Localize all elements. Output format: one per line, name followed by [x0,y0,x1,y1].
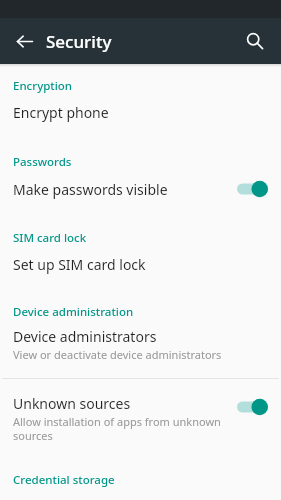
staticText: Encryption [13,78,73,94]
staticText: SIM card lock [13,230,87,246]
staticText: Device administrators [13,327,157,346]
button[interactable]: Unknown sources [0,387,281,450]
staticText: View or deactivate device administrators [13,347,222,362]
staticText: Encrypt phone [13,103,109,122]
button[interactable]: Toggle [237,180,268,198]
button[interactable]: Toggle [237,398,268,416]
staticText: Device administration [13,304,134,320]
staticText: Set up SIM card lock [13,255,146,274]
button[interactable]: Device administrators [0,320,281,369]
staticText: Allow installation of apps from unknown … [13,414,229,443]
button[interactable]: Encrypt phone [0,94,281,130]
staticText: Unknown sources [13,394,131,413]
staticText: Security [46,30,112,53]
button[interactable]: Set up SIM card lock [0,246,281,282]
staticText: Passwords [13,154,72,170]
button[interactable]: Back [6,23,42,59]
button[interactable]: Search [237,23,273,59]
staticText: Credential storage [13,472,115,488]
button[interactable]: Make passwords visible [0,170,281,208]
staticText: Make passwords visible [13,180,237,199]
